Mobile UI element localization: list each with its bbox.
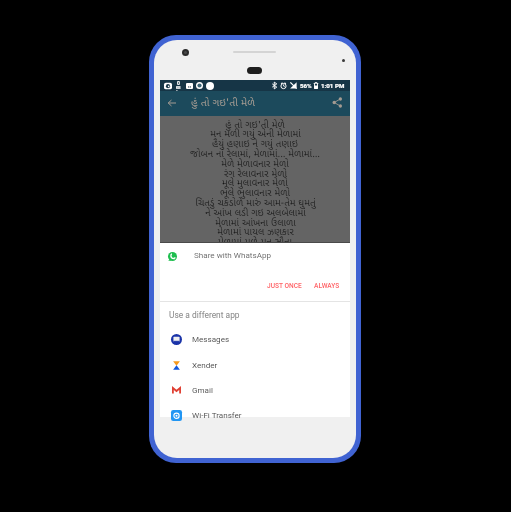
button[interactable]: Xender	[160, 351, 350, 376]
button[interactable]: Gmail	[160, 376, 350, 401]
staticText: 56%	[300, 82, 312, 89]
staticText: 1:01 PM	[321, 82, 345, 89]
staticText: ને આંખ લડી ગઇ અલબેલામાં	[205, 206, 306, 219]
button[interactable]: Messages	[160, 325, 350, 350]
staticText: રંગ રેલાવનાર મેળો	[224, 167, 287, 180]
staticText: Xender	[192, 360, 218, 369]
button[interactable]: JUST ONCE	[263, 278, 306, 294]
button[interactable]: Wi-Fi Transfer	[160, 401, 350, 426]
staticText: મૂલે મુલાવનાર મેળો	[222, 176, 288, 189]
staticText: જોબન નાં રેલામાં, મેળામાં... મેળામાં...	[190, 147, 320, 160]
staticText: મન મળી ગયું એની મેળામાં	[210, 127, 301, 140]
staticText: હું તો ગઇ'તી મેળે	[191, 95, 256, 109]
staticText: મેળામાં મળે મન સૌના	[218, 235, 292, 242]
staticText: હૈયું હણાઇ ને ગયું તણાઇ	[212, 137, 298, 150]
button[interactable]: ALWAYS	[310, 278, 344, 294]
button[interactable]: Share	[326, 91, 349, 116]
staticText: Messages	[192, 334, 230, 343]
button[interactable]: Back	[160, 91, 183, 116]
staticText: Wi-Fi Transfer	[192, 410, 242, 419]
staticText: Use a different app	[169, 310, 240, 320]
staticText: ભૂલે ભુલાવનાર મેળો	[220, 186, 290, 199]
staticText: ચિતડું ચકડોળે મારું આમ-તેમ ઘુમતું	[195, 196, 316, 209]
staticText: KB/s	[176, 86, 181, 91]
staticText: હું તો ગઇ'તી મેળે	[225, 118, 285, 131]
staticText: મેળામાં આંખના ઉલાળા	[215, 216, 296, 229]
staticText: મેળે મેળાવનાર મેળો	[221, 157, 289, 170]
button[interactable]: Share with WhatsApp	[160, 242, 350, 270]
staticText: ALWAYS	[314, 282, 340, 290]
staticText: Gmail	[192, 385, 213, 394]
staticText: Share with WhatsApp	[194, 250, 272, 259]
staticText: JUST ONCE	[267, 282, 302, 290]
staticText: 0	[177, 80, 180, 86]
staticText: મેળામાં પાયલ ઝણકાર	[217, 225, 294, 238]
